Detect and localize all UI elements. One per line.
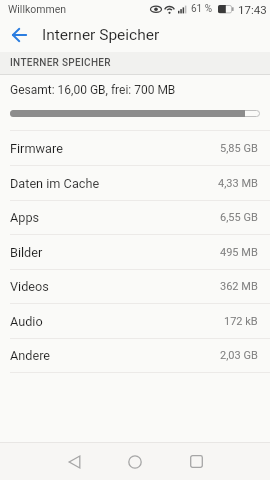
staticText: 172 kB bbox=[224, 315, 258, 328]
button[interactable] bbox=[0, 18, 38, 52]
button[interactable]: Apps bbox=[0, 201, 270, 234]
staticText: Willkommen bbox=[8, 3, 67, 15]
button[interactable]: Andere bbox=[0, 339, 270, 372]
staticText: Bilder bbox=[10, 245, 43, 260]
staticText: Audio bbox=[10, 314, 43, 329]
button[interactable]: Daten im Cache bbox=[0, 166, 270, 200]
button[interactable]: Videos bbox=[0, 270, 270, 303]
staticText: Interner Speicher bbox=[42, 26, 160, 44]
staticText: Andere bbox=[10, 348, 51, 363]
staticText: 2,03 GB bbox=[220, 349, 258, 362]
staticText: Apps bbox=[10, 210, 40, 225]
staticText: INTERNER SPEICHER bbox=[10, 57, 111, 69]
staticText: 17:43 bbox=[238, 3, 267, 16]
button[interactable] bbox=[173, 443, 219, 480]
staticText: 495 MB bbox=[220, 246, 258, 259]
button[interactable]: Firmware bbox=[0, 131, 270, 165]
staticText: Videos bbox=[10, 279, 49, 294]
staticText: 362 MB bbox=[220, 280, 258, 293]
staticText: 5,85 GB bbox=[220, 142, 258, 155]
staticText: Firmware bbox=[10, 141, 63, 156]
staticText: Daten im Cache bbox=[10, 176, 100, 191]
button[interactable]: Bilder bbox=[0, 235, 270, 269]
staticText: Gesamt: 16,00 GB, frei: 700 MB bbox=[10, 83, 176, 97]
staticText: 6,55 GB bbox=[220, 211, 258, 224]
button[interactable]: Audio bbox=[0, 304, 270, 338]
staticText: 4,33 MB bbox=[218, 177, 258, 190]
button[interactable] bbox=[112, 443, 158, 480]
staticText: 61 % bbox=[191, 3, 213, 15]
button[interactable] bbox=[51, 443, 97, 480]
